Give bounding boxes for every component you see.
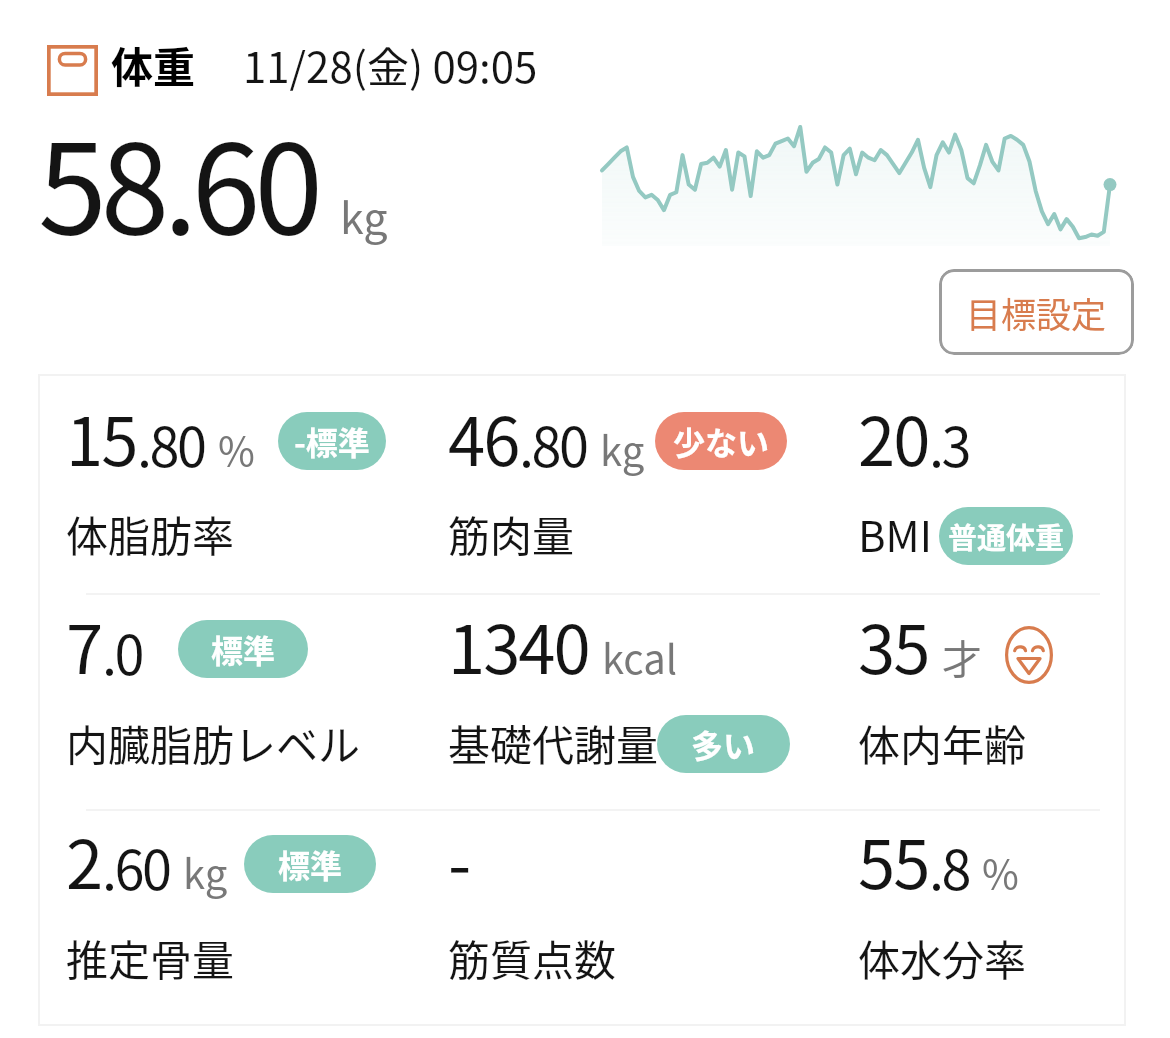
staticText: 2 xyxy=(66,811,102,908)
staticText: 1340 xyxy=(448,596,589,693)
staticText: kcal xyxy=(602,628,678,686)
button[interactable]: 普通体重 xyxy=(939,507,1073,565)
staticText: 筋質点数 xyxy=(448,927,617,988)
button[interactable]: 標準 xyxy=(178,620,308,678)
staticText: 推定骨量 xyxy=(66,927,235,988)
button[interactable]: 体内年齢 xyxy=(858,712,1027,773)
button[interactable]: 15 xyxy=(66,388,386,485)
button[interactable]: 少ない xyxy=(655,412,787,470)
staticText: 標準 xyxy=(211,626,276,672)
button[interactable]: 2 xyxy=(66,811,376,908)
button[interactable]: Weight scale xyxy=(42,34,538,95)
staticText: 11/28(金) 09:05 xyxy=(243,34,538,95)
staticText: 内臓脂肪レベル xyxy=(66,712,361,773)
button[interactable]: 標準 xyxy=(244,835,376,893)
staticText: 46 xyxy=(448,388,519,485)
staticText: 体重 xyxy=(111,34,196,95)
button[interactable]: BMI xyxy=(858,503,1067,564)
staticText: % xyxy=(218,420,255,478)
staticText: 基礎代謝量 xyxy=(448,712,659,773)
button[interactable]: -標準 xyxy=(278,412,386,470)
button[interactable]: 体脂肪率 xyxy=(66,503,235,564)
staticText: 55 xyxy=(858,811,929,908)
staticText: 20 xyxy=(858,388,929,485)
staticText: kg xyxy=(600,420,645,478)
other: Weight trend chart xyxy=(602,118,1110,246)
button[interactable]: 55 xyxy=(858,811,1019,908)
staticText: -標準 xyxy=(294,418,370,464)
staticText: 普通体重 xyxy=(948,515,1065,557)
staticText: .80 xyxy=(519,404,587,482)
staticText: .80 xyxy=(137,404,205,482)
staticText: 筋肉量 xyxy=(448,503,575,564)
staticText: - xyxy=(448,811,470,908)
staticText: 少ない xyxy=(673,418,770,464)
button[interactable]: 1340 xyxy=(448,596,678,693)
button[interactable]: 7 xyxy=(66,596,308,693)
staticText: % xyxy=(982,843,1019,901)
staticText: 15 xyxy=(66,388,137,485)
button[interactable]: 基礎代謝量 xyxy=(448,712,792,773)
staticText: 体脂肪率 xyxy=(66,503,235,564)
button[interactable]: 多い xyxy=(657,715,790,773)
staticText: 58.60 xyxy=(38,90,317,270)
staticText: .60 xyxy=(102,827,170,905)
button[interactable]: 筋肉量 xyxy=(448,503,575,564)
button[interactable]: 推定骨量 xyxy=(66,927,235,988)
button[interactable]: 目標設定 xyxy=(939,269,1134,355)
button[interactable]: 35 xyxy=(858,596,1053,693)
staticText: 標準 xyxy=(278,841,343,887)
staticText: 目標設定 xyxy=(966,287,1107,338)
staticText: kg xyxy=(183,843,228,901)
staticText: .0 xyxy=(102,612,142,690)
staticText: 7 xyxy=(66,596,102,693)
staticText: .8 xyxy=(929,827,969,905)
button[interactable]: 20 xyxy=(858,388,969,485)
staticText: kg xyxy=(340,184,388,246)
staticText: 35 xyxy=(858,596,929,693)
staticText: .3 xyxy=(929,404,969,482)
staticText: BMI xyxy=(858,503,933,564)
button[interactable]: 内臓脂肪レベル xyxy=(66,712,361,773)
button[interactable]: 筋質点数 xyxy=(448,927,617,988)
staticText: 多い xyxy=(691,721,756,767)
staticText: 体水分率 xyxy=(858,927,1027,988)
button[interactable]: - xyxy=(448,811,470,908)
other: Weight scale xyxy=(47,45,98,96)
staticText: 体内年齢 xyxy=(858,712,1027,773)
staticText: 才 xyxy=(942,628,982,686)
button[interactable]: 46 xyxy=(448,388,787,485)
button[interactable]: 体水分率 xyxy=(858,927,1027,988)
